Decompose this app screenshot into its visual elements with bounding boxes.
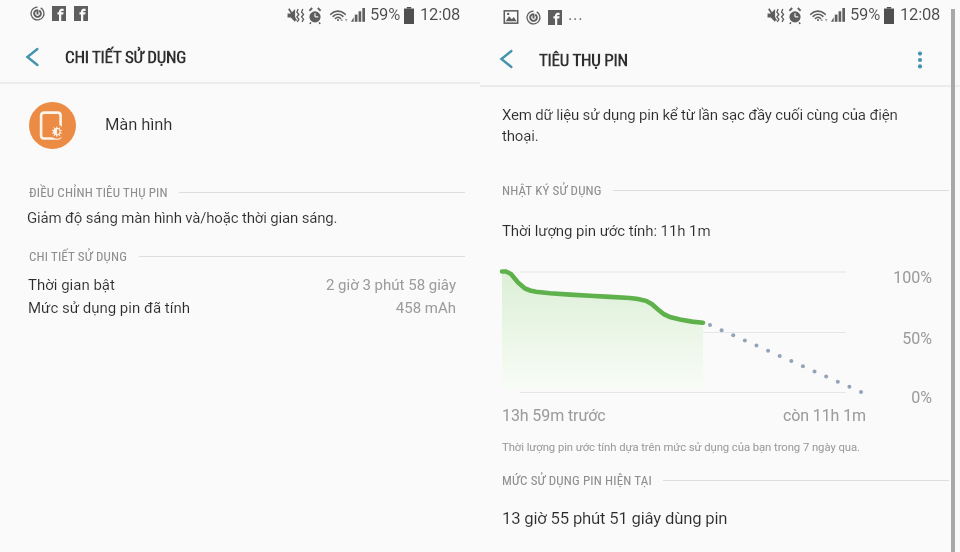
staticText: TIÊU THỤ PIN [539, 50, 628, 70]
button[interactable]: Màn hình [0, 93, 480, 159]
staticText: CHI TIẾT SỬ DỤNG [29, 249, 128, 264]
button[interactable]: Back [10, 35, 54, 79]
staticText: Màn hình [105, 115, 173, 134]
staticText: MỨC SỬ DỤNG PIN HIỆN TẠI [502, 473, 652, 488]
button[interactable]: Thời gian bật [0, 271, 480, 294]
staticText: 2 giờ 3 phút 58 giây [0, 276, 456, 294]
staticText: Thời gian bật [28, 276, 115, 294]
staticText: Giảm độ sáng màn hình và/hoặc thời gian … [27, 209, 338, 227]
other: Back [497, 49, 517, 69]
staticText: 59% [850, 5, 881, 24]
staticText: 50% [480, 329, 932, 348]
staticText: 0% [480, 388, 932, 407]
staticText: ĐIỀU CHỈNH TIÊU THỤ PIN [29, 185, 168, 200]
staticText: Thời lượng pin ước tính dựa trên mức sử … [502, 441, 860, 454]
staticText: NHẬT KÝ SỬ DỤNG [502, 183, 602, 198]
button[interactable]: Back [485, 37, 529, 81]
other: Back [23, 47, 43, 67]
staticText: 13 giờ 55 phút 51 giây dùng pin [502, 509, 728, 529]
staticText: 100% [480, 268, 932, 287]
staticText: 59% [370, 5, 401, 24]
staticText: 12:08 [900, 5, 941, 24]
staticText: còn 11h 1m [480, 406, 866, 425]
staticText: Thời lượng pin ước tính: 11h 1m [502, 222, 711, 240]
staticText: 13h 59m trước [502, 406, 606, 425]
staticText: ... [568, 4, 584, 24]
button[interactable]: More options [905, 45, 935, 75]
staticText: 458 mAh [0, 299, 456, 317]
staticText: 12:08 [420, 5, 461, 24]
staticText: CHI TIẾT SỬ DỤNG [65, 47, 187, 67]
staticText: Xem dữ liệu sử dụng pin kể từ lần sạc đầ… [502, 106, 898, 145]
button[interactable]: Mức sử dụng pin đã tính [0, 294, 480, 317]
staticText: Mức sử dụng pin đã tính [28, 299, 190, 317]
